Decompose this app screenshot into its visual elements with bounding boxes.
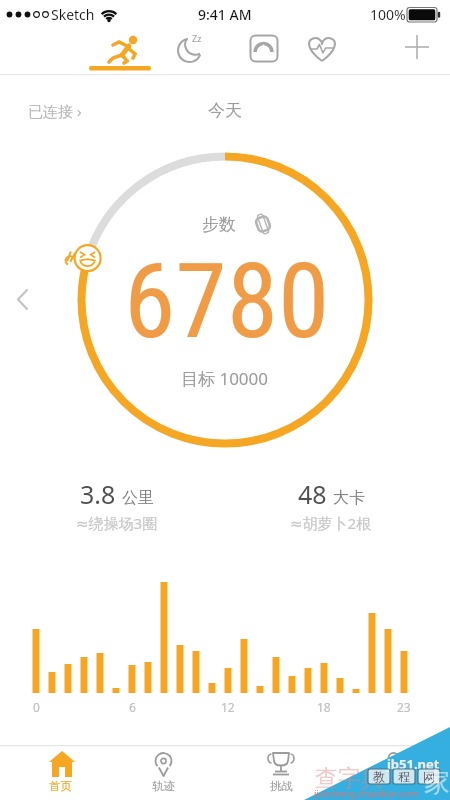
staticText: 0 bbox=[33, 699, 40, 715]
button[interactable]: 我的 bbox=[351, 747, 436, 800]
staticText: 网 bbox=[423, 769, 435, 784]
staticText: 18 bbox=[317, 699, 331, 715]
staticText: 12 bbox=[221, 699, 235, 715]
staticText: Sketch bbox=[51, 5, 95, 24]
staticText: 9:41 AM bbox=[198, 5, 252, 24]
staticText: 6 bbox=[129, 699, 136, 715]
staticText: Zz bbox=[192, 32, 202, 44]
button[interactable]: Zz bbox=[170, 28, 214, 72]
staticText: 6780 bbox=[124, 241, 330, 363]
staticText: 23 bbox=[397, 699, 411, 715]
staticText: 家 bbox=[424, 766, 450, 799]
staticText: 48 bbox=[298, 477, 327, 511]
button[interactable] bbox=[6, 283, 40, 317]
button[interactable] bbox=[103, 28, 147, 72]
staticText: 今天 bbox=[208, 100, 242, 121]
staticText: 查字典 bbox=[315, 764, 384, 793]
staticText: 首页 bbox=[49, 779, 72, 793]
button[interactable]: 轨迹 bbox=[121, 747, 206, 800]
button[interactable] bbox=[242, 28, 286, 72]
staticText: 已连接 › bbox=[28, 101, 82, 121]
staticText: 程 bbox=[398, 769, 410, 784]
staticText: 目标 10000 bbox=[181, 367, 269, 390]
staticText: 公里 bbox=[122, 488, 154, 508]
staticText: ≈胡萝卜2根 bbox=[290, 513, 372, 533]
staticText: 3.8 bbox=[80, 477, 116, 511]
button[interactable]: 已连接 › bbox=[24, 98, 94, 124]
button[interactable] bbox=[395, 28, 439, 72]
button[interactable] bbox=[300, 28, 344, 72]
staticText: jb51.net bbox=[387, 755, 440, 773]
staticText: 教 bbox=[373, 769, 385, 784]
button[interactable]: 挑战 bbox=[236, 747, 326, 800]
staticText: 大卡 bbox=[333, 488, 365, 508]
button[interactable]: 首页 bbox=[18, 747, 103, 800]
staticText: 步数 bbox=[202, 214, 236, 235]
staticText: 挑战 bbox=[270, 779, 293, 793]
staticText: ≈绕操场3圈 bbox=[76, 513, 158, 533]
staticText: 100% bbox=[370, 5, 406, 24]
staticText: 轨迹 bbox=[152, 779, 175, 793]
staticText: 我的 bbox=[382, 779, 405, 793]
staticText: jiaocheng.chazidian.com bbox=[314, 787, 419, 799]
